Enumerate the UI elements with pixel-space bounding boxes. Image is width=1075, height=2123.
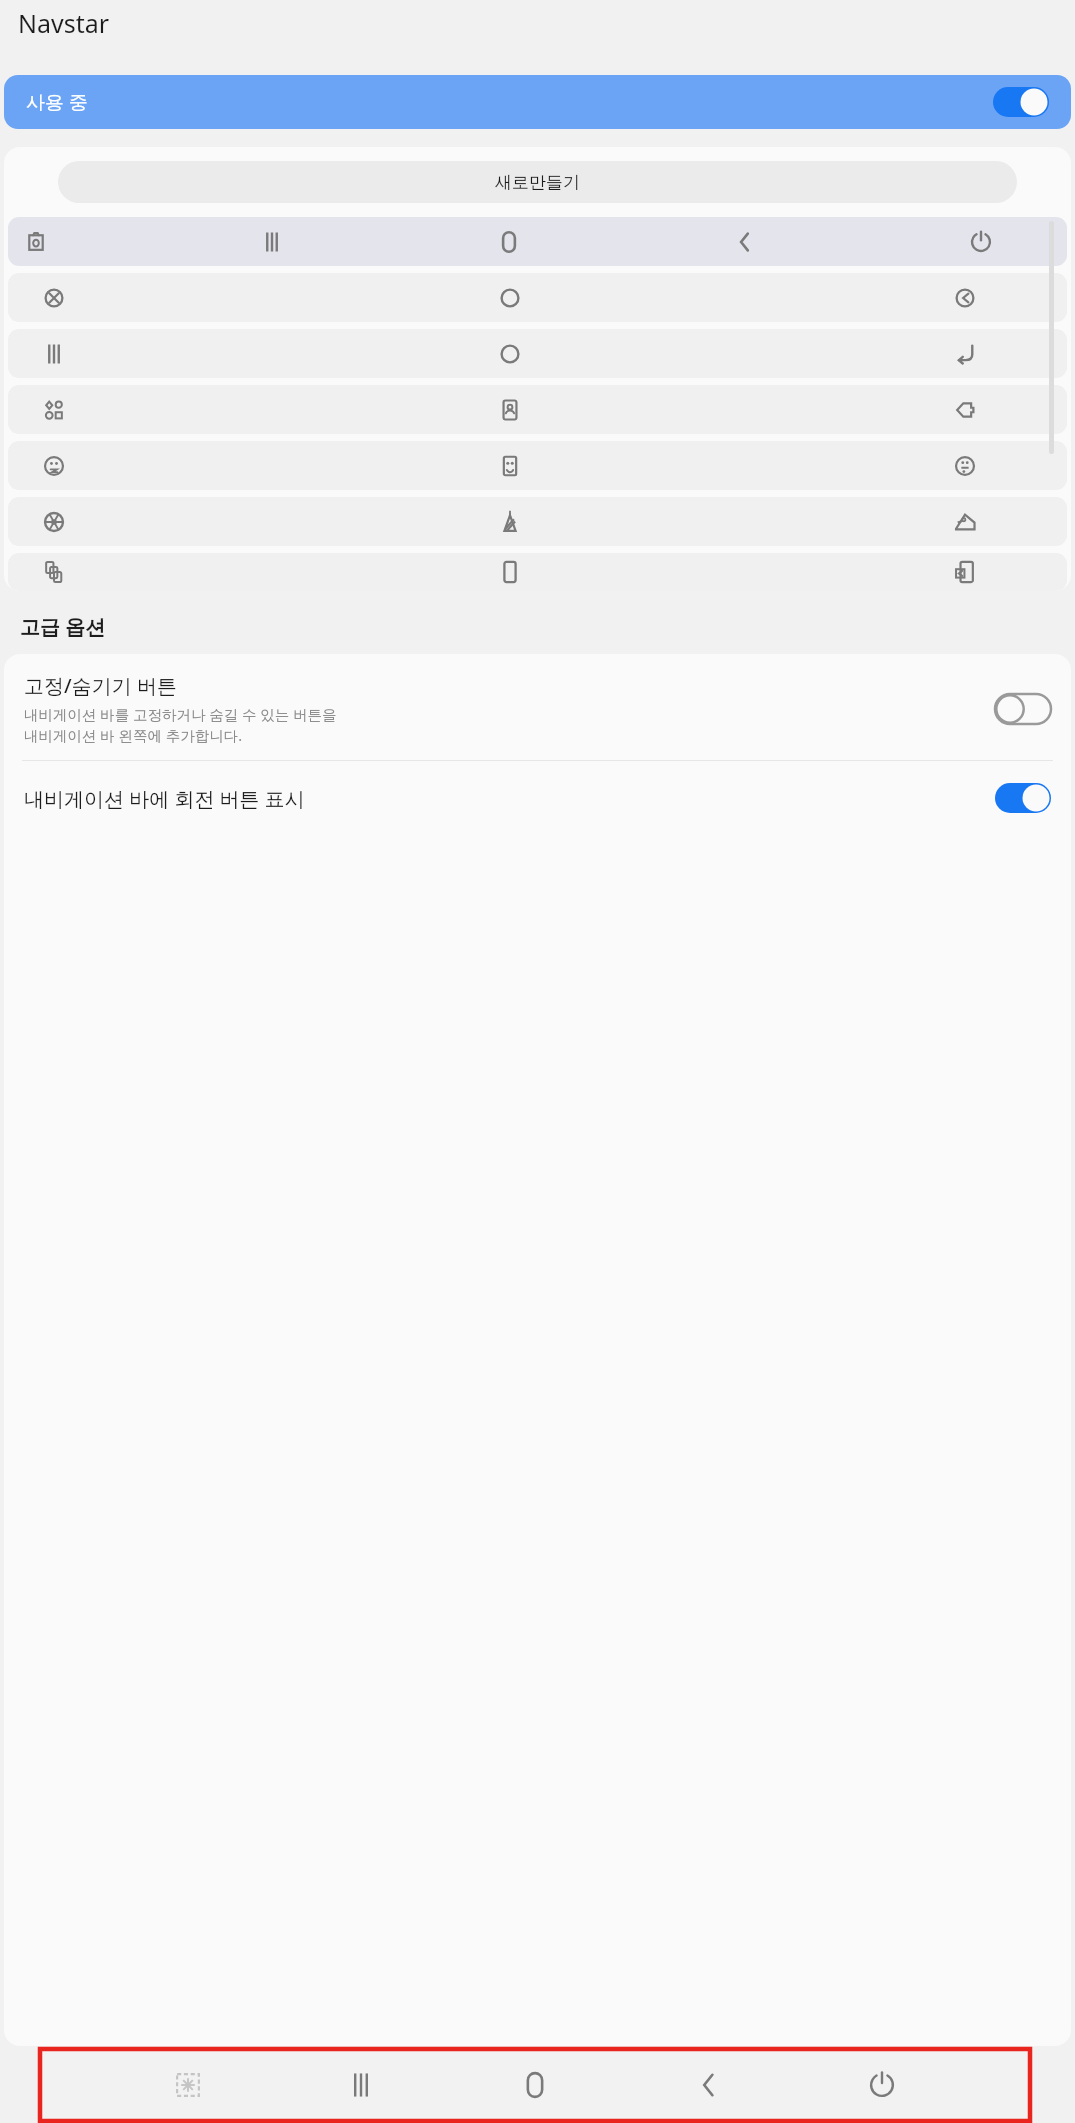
button[interactable]: [8, 385, 1067, 434]
staticText: 고정/숨기기 버튼: [24, 672, 177, 699]
button[interactable]: Power: [854, 2057, 910, 2113]
staticText: 새로만들기: [495, 172, 580, 193]
button[interactable]: Back: [681, 2057, 737, 2113]
button[interactable]: 사용 중: [4, 75, 1071, 129]
staticText: 내비게이션 바를 고정하거나 숨길 수 있는 버튼을 내비게이션 바 왼쪽에 추…: [24, 704, 337, 746]
staticText: 내비게이션 바에 회전 버튼 표시: [24, 785, 995, 812]
button[interactable]: [8, 441, 1067, 490]
staticText: 사용 중: [26, 89, 88, 115]
button[interactable]: [8, 273, 1067, 322]
button[interactable]: 고정/숨기기 버튼: [4, 654, 1071, 760]
staticText: 고급 옵션: [20, 613, 106, 640]
button[interactable]: [8, 329, 1067, 378]
button[interactable]: Pin navigation bar: [160, 2057, 216, 2113]
button[interactable]: 내비게이션 바에 회전 버튼 표시: [4, 761, 1071, 813]
button[interactable]: Home: [507, 2057, 563, 2113]
button[interactable]: Recents: [333, 2057, 389, 2113]
button[interactable]: [8, 553, 1067, 591]
button[interactable]: 새로만들기: [58, 161, 1017, 203]
staticText: Navstar: [18, 6, 110, 40]
button[interactable]: [8, 497, 1067, 546]
button[interactable]: [8, 217, 1067, 266]
